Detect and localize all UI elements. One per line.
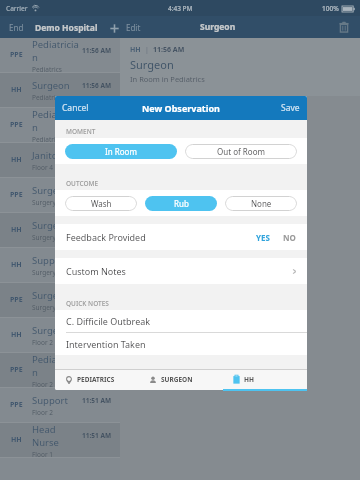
staticText: 11:51 AM: [82, 431, 112, 440]
staticText: In Room: [105, 146, 137, 157]
staticText: 11:56 AM: [82, 46, 112, 55]
staticText: PEDIATRICS: [77, 375, 115, 384]
staticText: Surgery Unit: [32, 233, 71, 242]
staticText: Surgeon: [32, 184, 70, 197]
staticText: OUTCOME: [66, 179, 99, 188]
button[interactable]: PPE: [0, 108, 120, 142]
button[interactable]: PPE: [0, 353, 120, 387]
staticText: Surgeon: [32, 79, 70, 92]
staticText: Floor 2: [32, 338, 54, 347]
button[interactable]: Edit: [124, 19, 143, 36]
staticText: New Observation: [142, 102, 220, 114]
button[interactable]: C. Difficile Outbreak: [55, 310, 307, 332]
staticText: 11:53 AM: [82, 256, 112, 265]
staticText: Pediatrics: [32, 135, 62, 142]
staticText: Surgeon: [32, 219, 70, 232]
button[interactable]: Intervention Taken: [55, 333, 307, 355]
staticText: Support: [32, 254, 68, 267]
staticText: 4:43 PM: [168, 4, 193, 13]
staticText: Surgeon: [200, 21, 236, 33]
button[interactable]: Wash: [65, 196, 137, 211]
staticText: 11:56 AM: [82, 81, 112, 90]
button[interactable]: HH: [0, 213, 120, 247]
button[interactable]: SURGEON: [139, 369, 223, 390]
staticText: End: [9, 22, 24, 33]
staticText: Pediatrician: [32, 353, 82, 379]
staticText: Save: [281, 102, 300, 114]
staticText: HH: [11, 85, 22, 95]
button[interactable]: Custom Notes: [55, 258, 307, 284]
staticText: In Room in Pediatrics: [130, 74, 205, 84]
button[interactable]: Cancel: [55, 98, 96, 118]
staticText: Feedback Provided: [66, 231, 146, 243]
button[interactable]: HH: [0, 423, 120, 457]
staticText: Surgeon: [32, 324, 70, 337]
staticText: HH: [11, 155, 22, 165]
staticText: Surgery Unit: [32, 268, 71, 277]
button[interactable]: In Room: [65, 144, 177, 159]
staticText: Floor 4: [32, 163, 54, 172]
button[interactable]: HH: [0, 318, 120, 352]
button[interactable]: PPE: [0, 283, 120, 317]
button[interactable]: None: [225, 196, 297, 211]
button[interactable]: Rub: [145, 196, 217, 211]
staticText: HH: [11, 330, 22, 340]
staticText: PPE: [10, 120, 23, 130]
button[interactable]: PPE: [0, 178, 120, 212]
staticText: MOMENT: [66, 127, 96, 136]
button[interactable]: HH: [0, 73, 120, 107]
staticText: Pediatrician: [32, 108, 82, 134]
staticText: QUICK NOTES: [66, 299, 109, 308]
staticText: Intervention Taken: [66, 338, 146, 350]
staticText: Pediatrics: [32, 93, 62, 102]
button[interactable]: HH: [0, 143, 120, 177]
staticText: SURGEON: [161, 375, 193, 384]
staticText: Surgeon: [32, 289, 70, 302]
staticText: PPE: [10, 365, 23, 375]
staticText: 11:56 AM: [153, 45, 185, 55]
staticText: 11:51 AM: [82, 396, 112, 405]
staticText: 11:55 AM: [82, 116, 112, 125]
staticText: NO: [283, 232, 296, 243]
staticText: Edit: [126, 22, 141, 33]
button[interactable]: End: [7, 19, 26, 36]
staticText: HH: [130, 45, 141, 55]
staticText: Floor 2: [32, 408, 54, 417]
staticText: HH: [11, 435, 22, 445]
staticText: None: [251, 198, 272, 209]
staticText: |: [145, 45, 149, 55]
staticText: Floor 2: [32, 380, 54, 387]
staticText: 100%: [322, 4, 339, 13]
staticText: PPE: [10, 400, 23, 410]
staticText: 11:54 AM: [82, 221, 112, 230]
button[interactable]: PPE: [0, 388, 120, 422]
staticText: Floor 1: [32, 450, 54, 457]
button[interactable]: Delete: [336, 19, 352, 35]
staticText: C. Difficile Outbreak: [66, 315, 151, 327]
staticText: Wash: [91, 198, 112, 209]
staticText: Demo Hospital: [35, 22, 98, 34]
staticText: YES: [256, 232, 270, 243]
staticText: PPE: [10, 50, 23, 60]
button[interactable]: Add: [107, 21, 121, 35]
staticText: Surgery Unit: [32, 198, 71, 207]
staticText: PPE: [10, 295, 23, 305]
button[interactable]: Feedback Provided: [55, 224, 307, 250]
button[interactable]: Out of Room: [185, 144, 297, 159]
staticText: Out of Room: [217, 146, 265, 157]
button[interactable]: HH: [0, 248, 120, 282]
button[interactable]: Save: [274, 98, 307, 118]
staticText: Janitor: [32, 149, 62, 162]
button[interactable]: PPE: [0, 38, 120, 72]
staticText: 11:54 AM: [82, 186, 112, 195]
staticText: HH: [11, 225, 22, 235]
staticText: Surgery Unit: [32, 303, 71, 312]
staticText: Pediatrics: [32, 65, 62, 72]
button[interactable]: HH: [223, 369, 307, 390]
staticText: Pediatrician: [32, 38, 82, 64]
button[interactable]: PEDIATRICS: [55, 369, 139, 390]
staticText: 11:52 AM: [82, 326, 112, 335]
staticText: Cancel: [62, 102, 89, 114]
staticText: HH: [244, 375, 254, 384]
